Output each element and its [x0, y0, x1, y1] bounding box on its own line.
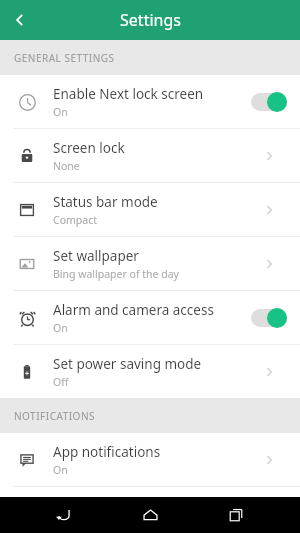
staticText: On: [53, 463, 68, 477]
staticText: Enable Next lock screen: [53, 85, 204, 103]
button[interactable]: Status bar mode: [0, 183, 300, 236]
button[interactable]: Toggle: [251, 92, 287, 112]
staticText: Screen lock: [53, 139, 125, 157]
button[interactable]: Alarm and camera access: [0, 291, 300, 344]
button[interactable]: Home: [128, 497, 172, 533]
staticText: Set power saving mode: [53, 355, 202, 373]
button[interactable]: Enable Next lock screen: [0, 75, 300, 128]
staticText: Bing wallpaper of the day: [53, 267, 179, 281]
staticText: Compact: [53, 213, 97, 227]
staticText: None: [53, 159, 80, 173]
staticText: Set wallpaper: [53, 247, 139, 265]
staticText: App notifications: [53, 443, 161, 461]
staticText: NOTIFICATIONS: [14, 409, 95, 423]
button[interactable]: Back: [42, 497, 86, 533]
button[interactable]: Back: [0, 0, 40, 40]
staticText: Settings: [120, 9, 181, 31]
button[interactable]: Screen lock: [0, 129, 300, 182]
staticText: Status bar mode: [53, 193, 158, 211]
button[interactable]: Recents: [214, 497, 258, 533]
button[interactable]: Set wallpaper: [0, 237, 300, 290]
staticText: Alarm and camera access: [53, 301, 214, 319]
staticText: GENERAL SETTINGS: [14, 51, 115, 65]
button[interactable]: Set power saving mode: [0, 345, 300, 398]
staticText: On: [53, 321, 68, 335]
staticText: On: [53, 105, 68, 119]
button[interactable]: Toggle: [251, 308, 287, 328]
staticText: Off: [53, 375, 69, 389]
button[interactable]: App notifications: [0, 433, 300, 486]
